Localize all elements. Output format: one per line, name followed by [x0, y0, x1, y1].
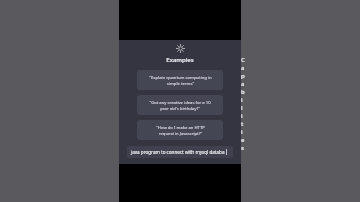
button[interactable]: java program to connect with mysql datab…: [127, 146, 233, 158]
staticText: "Explain quantum computing in simple ter…: [149, 75, 212, 86]
button[interactable]: "Got any creative ideas for a 10 year ol…: [137, 95, 223, 115]
button[interactable]: "How do I make an HTTP request in Javasc…: [137, 120, 223, 140]
staticText: "How do I make an HTTP request in Javasc…: [156, 125, 205, 136]
staticText: java program to connect with mysql datab…: [131, 149, 225, 155]
staticText: Examples: [166, 56, 194, 64]
other: Examples: [176, 44, 185, 53]
button[interactable]: "Explain quantum computing in simple ter…: [137, 70, 223, 90]
staticText: "Got any creative ideas for a 10 year ol…: [149, 100, 211, 111]
